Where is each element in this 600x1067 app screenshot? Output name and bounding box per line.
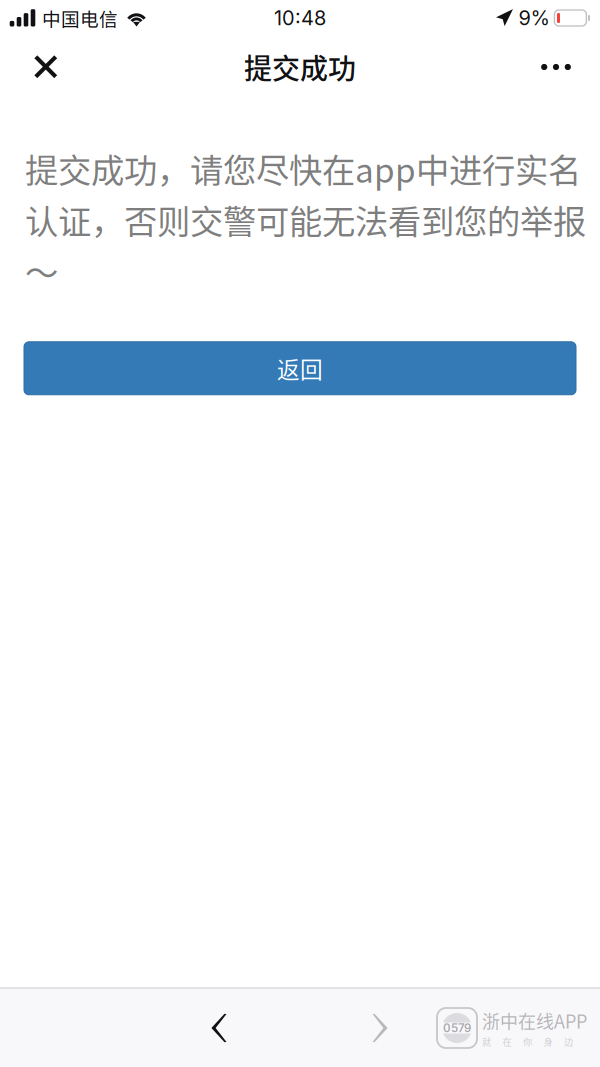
staticText: 返回 (277, 352, 323, 385)
button[interactable]: More options (532, 43, 580, 91)
button[interactable]: Close (22, 43, 70, 91)
button[interactable]: Forward (347, 989, 411, 1067)
button[interactable]: 返回 (24, 342, 576, 395)
staticText: 0579 (443, 1021, 471, 1035)
staticText: 中国电信 (42, 4, 118, 31)
staticText: 就在你身边 (482, 1035, 573, 1048)
staticText: 提交成功，请您尽快在app中进行实名认证，否则交警可能无法看到您的举报～ (25, 144, 586, 295)
staticText: 9% (518, 6, 549, 30)
staticText: 提交成功 (244, 47, 356, 87)
staticText: 浙中在线APP (482, 1008, 587, 1034)
button[interactable]: Back (188, 989, 252, 1067)
staticText: 10:48 (274, 6, 326, 30)
